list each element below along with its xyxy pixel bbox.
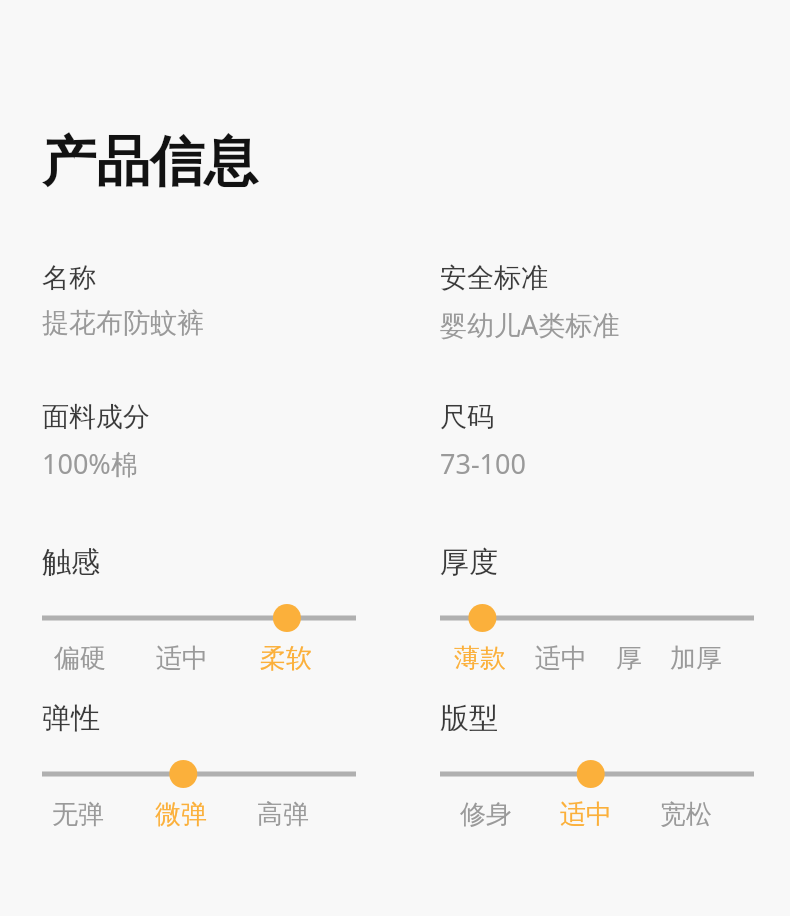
button[interactable]: 薄款	[454, 638, 510, 678]
button[interactable]	[440, 603, 754, 633]
staticText: 产品信息	[42, 128, 258, 196]
button[interactable]: 高弹	[257, 794, 313, 834]
button[interactable]: 柔软	[260, 638, 316, 678]
staticText: 适中	[535, 642, 587, 675]
button[interactable]	[42, 759, 356, 789]
staticText: 适中	[560, 798, 612, 831]
staticText: 提花布防蚊裤	[42, 306, 204, 340]
staticText: 修身	[460, 798, 512, 831]
staticText: 宽松	[660, 798, 712, 831]
button[interactable]: 无弹	[52, 794, 108, 834]
staticText: 73-100	[440, 445, 526, 482]
button[interactable]: 加厚	[670, 638, 726, 678]
staticText: 弹性	[42, 700, 100, 737]
staticText: 厚度	[440, 544, 498, 581]
staticText: 薄款	[454, 642, 506, 675]
staticText: 高弹	[257, 798, 309, 831]
button[interactable]: 修身	[460, 794, 516, 834]
staticText: 面料成分	[42, 400, 150, 434]
button[interactable]	[440, 759, 754, 789]
staticText: 微弹	[155, 798, 207, 831]
staticText: 触感	[42, 544, 100, 581]
staticText: 尺码	[440, 400, 494, 434]
staticText: 100%棉	[42, 445, 138, 482]
button[interactable]: 适中	[560, 794, 616, 834]
button[interactable]: 偏硬	[54, 638, 110, 678]
staticText: 厚	[616, 642, 642, 675]
staticText: 安全标准	[440, 261, 548, 295]
button[interactable]	[42, 603, 356, 633]
button[interactable]: 微弹	[155, 794, 211, 834]
staticText: 婴幼儿A类标准	[440, 306, 620, 343]
button[interactable]: 适中	[156, 638, 212, 678]
button[interactable]: 宽松	[660, 794, 716, 834]
button[interactable]: 厚	[616, 638, 646, 678]
button[interactable]: 适中	[535, 638, 591, 678]
staticText: 名称	[42, 261, 96, 295]
staticText: 加厚	[670, 642, 722, 675]
staticText: 适中	[156, 642, 208, 675]
staticText: 柔软	[260, 642, 312, 675]
staticText: 无弹	[52, 798, 104, 831]
staticText: 版型	[440, 700, 498, 737]
staticText: 偏硬	[54, 642, 106, 675]
